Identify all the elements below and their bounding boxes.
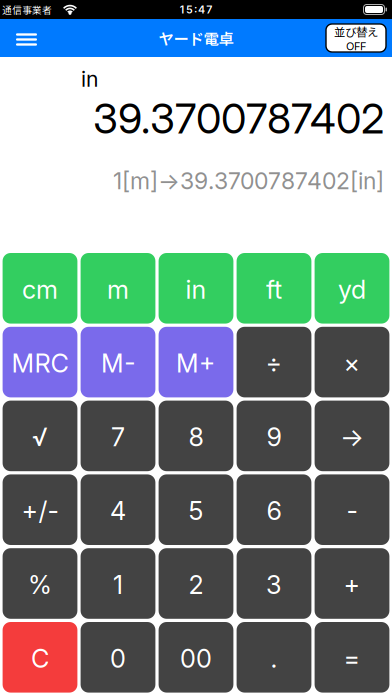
button[interactable]: M+: [159, 327, 233, 397]
staticText: 1[m]→39.3700787402[in]: [113, 167, 384, 195]
staticText: .: [270, 643, 277, 674]
button[interactable]: MRC: [3, 327, 77, 397]
staticText: M+: [176, 348, 216, 379]
staticText: %: [28, 569, 52, 600]
staticText: 通信事業者: [2, 2, 52, 17]
button[interactable]: 1: [81, 548, 155, 619]
button[interactable]: 00: [159, 622, 233, 693]
button[interactable]: .: [237, 622, 311, 693]
button[interactable]: 並び替え: [326, 24, 392, 52]
staticText: 3: [266, 569, 282, 600]
button[interactable]: ÷: [237, 327, 311, 397]
button[interactable]: 3: [237, 548, 311, 619]
staticText: 9: [266, 422, 281, 452]
staticText: 00: [180, 643, 212, 674]
button[interactable]: +/-: [3, 474, 77, 545]
button[interactable]: -: [315, 474, 389, 545]
button[interactable]: 4: [81, 474, 155, 545]
staticText: in: [81, 66, 99, 92]
button[interactable]: =: [315, 622, 389, 693]
button[interactable]: Menu: [0, 24, 37, 52]
staticText: 2: [188, 569, 203, 600]
staticText: -: [346, 496, 357, 526]
staticText: 0: [110, 643, 126, 674]
staticText: √: [32, 422, 48, 452]
button[interactable]: m: [81, 253, 155, 324]
button[interactable]: M-: [81, 327, 155, 397]
staticText: +: [343, 569, 360, 600]
button[interactable]: yd: [315, 253, 389, 324]
staticText: M-: [101, 348, 135, 379]
button[interactable]: 7: [81, 401, 155, 471]
button[interactable]: in: [159, 253, 233, 324]
staticText: MRC: [11, 348, 68, 379]
staticText: 8: [188, 422, 203, 452]
button[interactable]: 5: [159, 474, 233, 545]
button[interactable]: 6: [237, 474, 311, 545]
button[interactable]: →: [315, 401, 389, 471]
staticText: 並び替え: [334, 23, 378, 40]
staticText: yd: [338, 274, 366, 305]
staticText: OFF: [346, 40, 366, 53]
staticText: 5: [188, 496, 203, 526]
staticText: cm: [22, 274, 58, 305]
staticText: 15:47: [180, 3, 212, 16]
staticText: +/-: [21, 496, 58, 526]
button[interactable]: 9: [237, 401, 311, 471]
button[interactable]: ft: [237, 253, 311, 324]
button[interactable]: cm: [3, 253, 77, 324]
staticText: 39.3700787402: [93, 93, 384, 143]
staticText: →: [340, 422, 364, 452]
staticText: ft: [266, 274, 282, 305]
button[interactable]: +: [315, 548, 389, 619]
staticText: C: [31, 643, 49, 674]
button[interactable]: √: [3, 401, 77, 471]
staticText: m: [107, 274, 129, 305]
staticText: ×: [343, 348, 360, 379]
button[interactable]: 0: [81, 622, 155, 693]
staticText: 7: [111, 422, 125, 452]
staticText: in: [185, 274, 206, 305]
staticText: =: [343, 643, 360, 674]
button[interactable]: C: [3, 622, 77, 693]
staticText: 1: [113, 569, 123, 600]
staticText: 6: [266, 496, 281, 526]
button[interactable]: ×: [315, 327, 389, 397]
staticText: ÷: [265, 348, 282, 379]
button[interactable]: 2: [159, 548, 233, 619]
staticText: 4: [110, 496, 126, 526]
button[interactable]: 8: [159, 401, 233, 471]
button[interactable]: %: [3, 548, 77, 619]
staticText: ヤード電卓: [158, 27, 233, 49]
